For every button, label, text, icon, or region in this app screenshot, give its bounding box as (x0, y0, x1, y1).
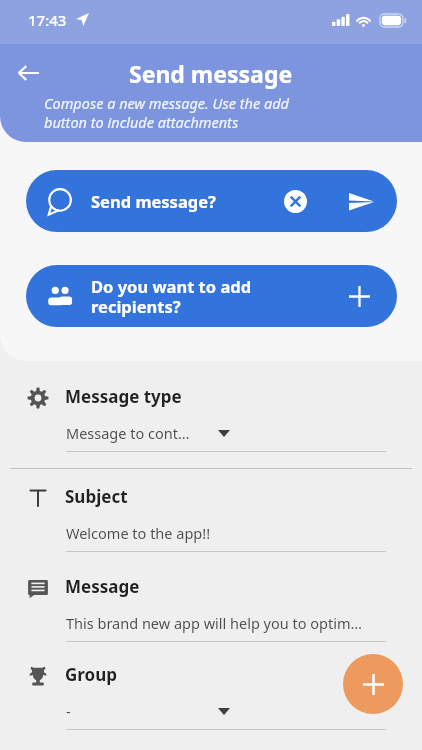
staticText: Subject (65, 485, 128, 508)
staticText: Message (65, 575, 140, 598)
button[interactable]: Send message? (26, 170, 397, 232)
button[interactable]: Message (0, 570, 422, 656)
button[interactable]: Back (8, 53, 48, 93)
other: Settings (27, 387, 49, 409)
staticText: Compose a new message. Use the add butto… (44, 93, 384, 132)
button[interactable]: Group (0, 658, 422, 744)
staticText: Group (65, 663, 117, 686)
staticText: - (66, 701, 196, 721)
staticText: Do you want to add recipients? (91, 275, 252, 318)
staticText: 17:43 (28, 10, 67, 30)
button[interactable]: Subject (0, 480, 422, 566)
other: Message (27, 577, 49, 599)
staticText: This brand new app will help you to opti… (66, 613, 366, 633)
button[interactable]: Settings (0, 380, 422, 466)
button[interactable]: Add recipients (343, 280, 375, 312)
staticText: Welcome to the app!! (66, 523, 366, 543)
staticText: Send message (129, 58, 293, 89)
staticText: Message type (65, 385, 182, 408)
other: Subject (27, 487, 49, 509)
button[interactable]: Add (343, 654, 403, 714)
button[interactable]: Do you want to add recipients? (26, 265, 397, 327)
staticText: Send message? (91, 190, 216, 212)
button[interactable]: Clear message (279, 185, 311, 217)
other: Group (27, 665, 49, 687)
staticText: Message to contacts (66, 423, 196, 443)
button[interactable]: Send (345, 185, 377, 217)
